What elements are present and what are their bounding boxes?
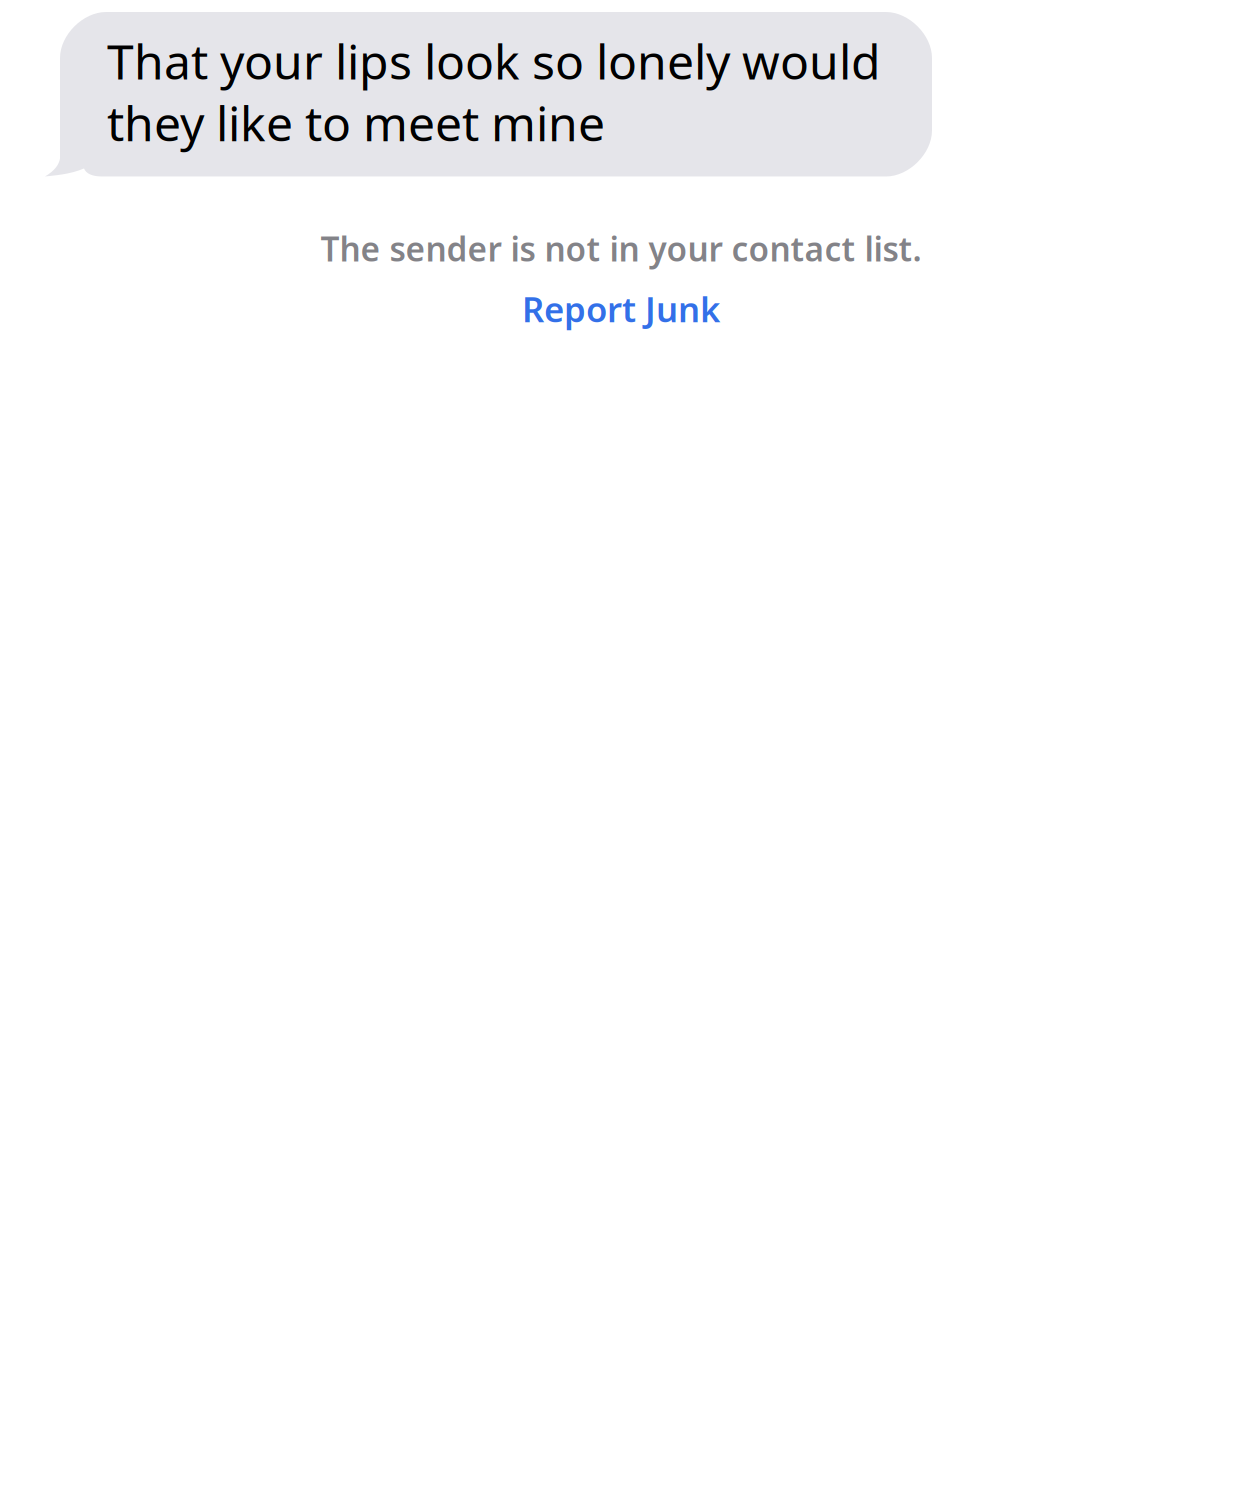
staticText: The sender is not in your contact list. [320,226,921,271]
staticText: Report Junk [522,286,720,332]
staticText: That your lips look so lonely would they… [107,29,881,154]
button[interactable]: Report Junk [0,271,1242,348]
